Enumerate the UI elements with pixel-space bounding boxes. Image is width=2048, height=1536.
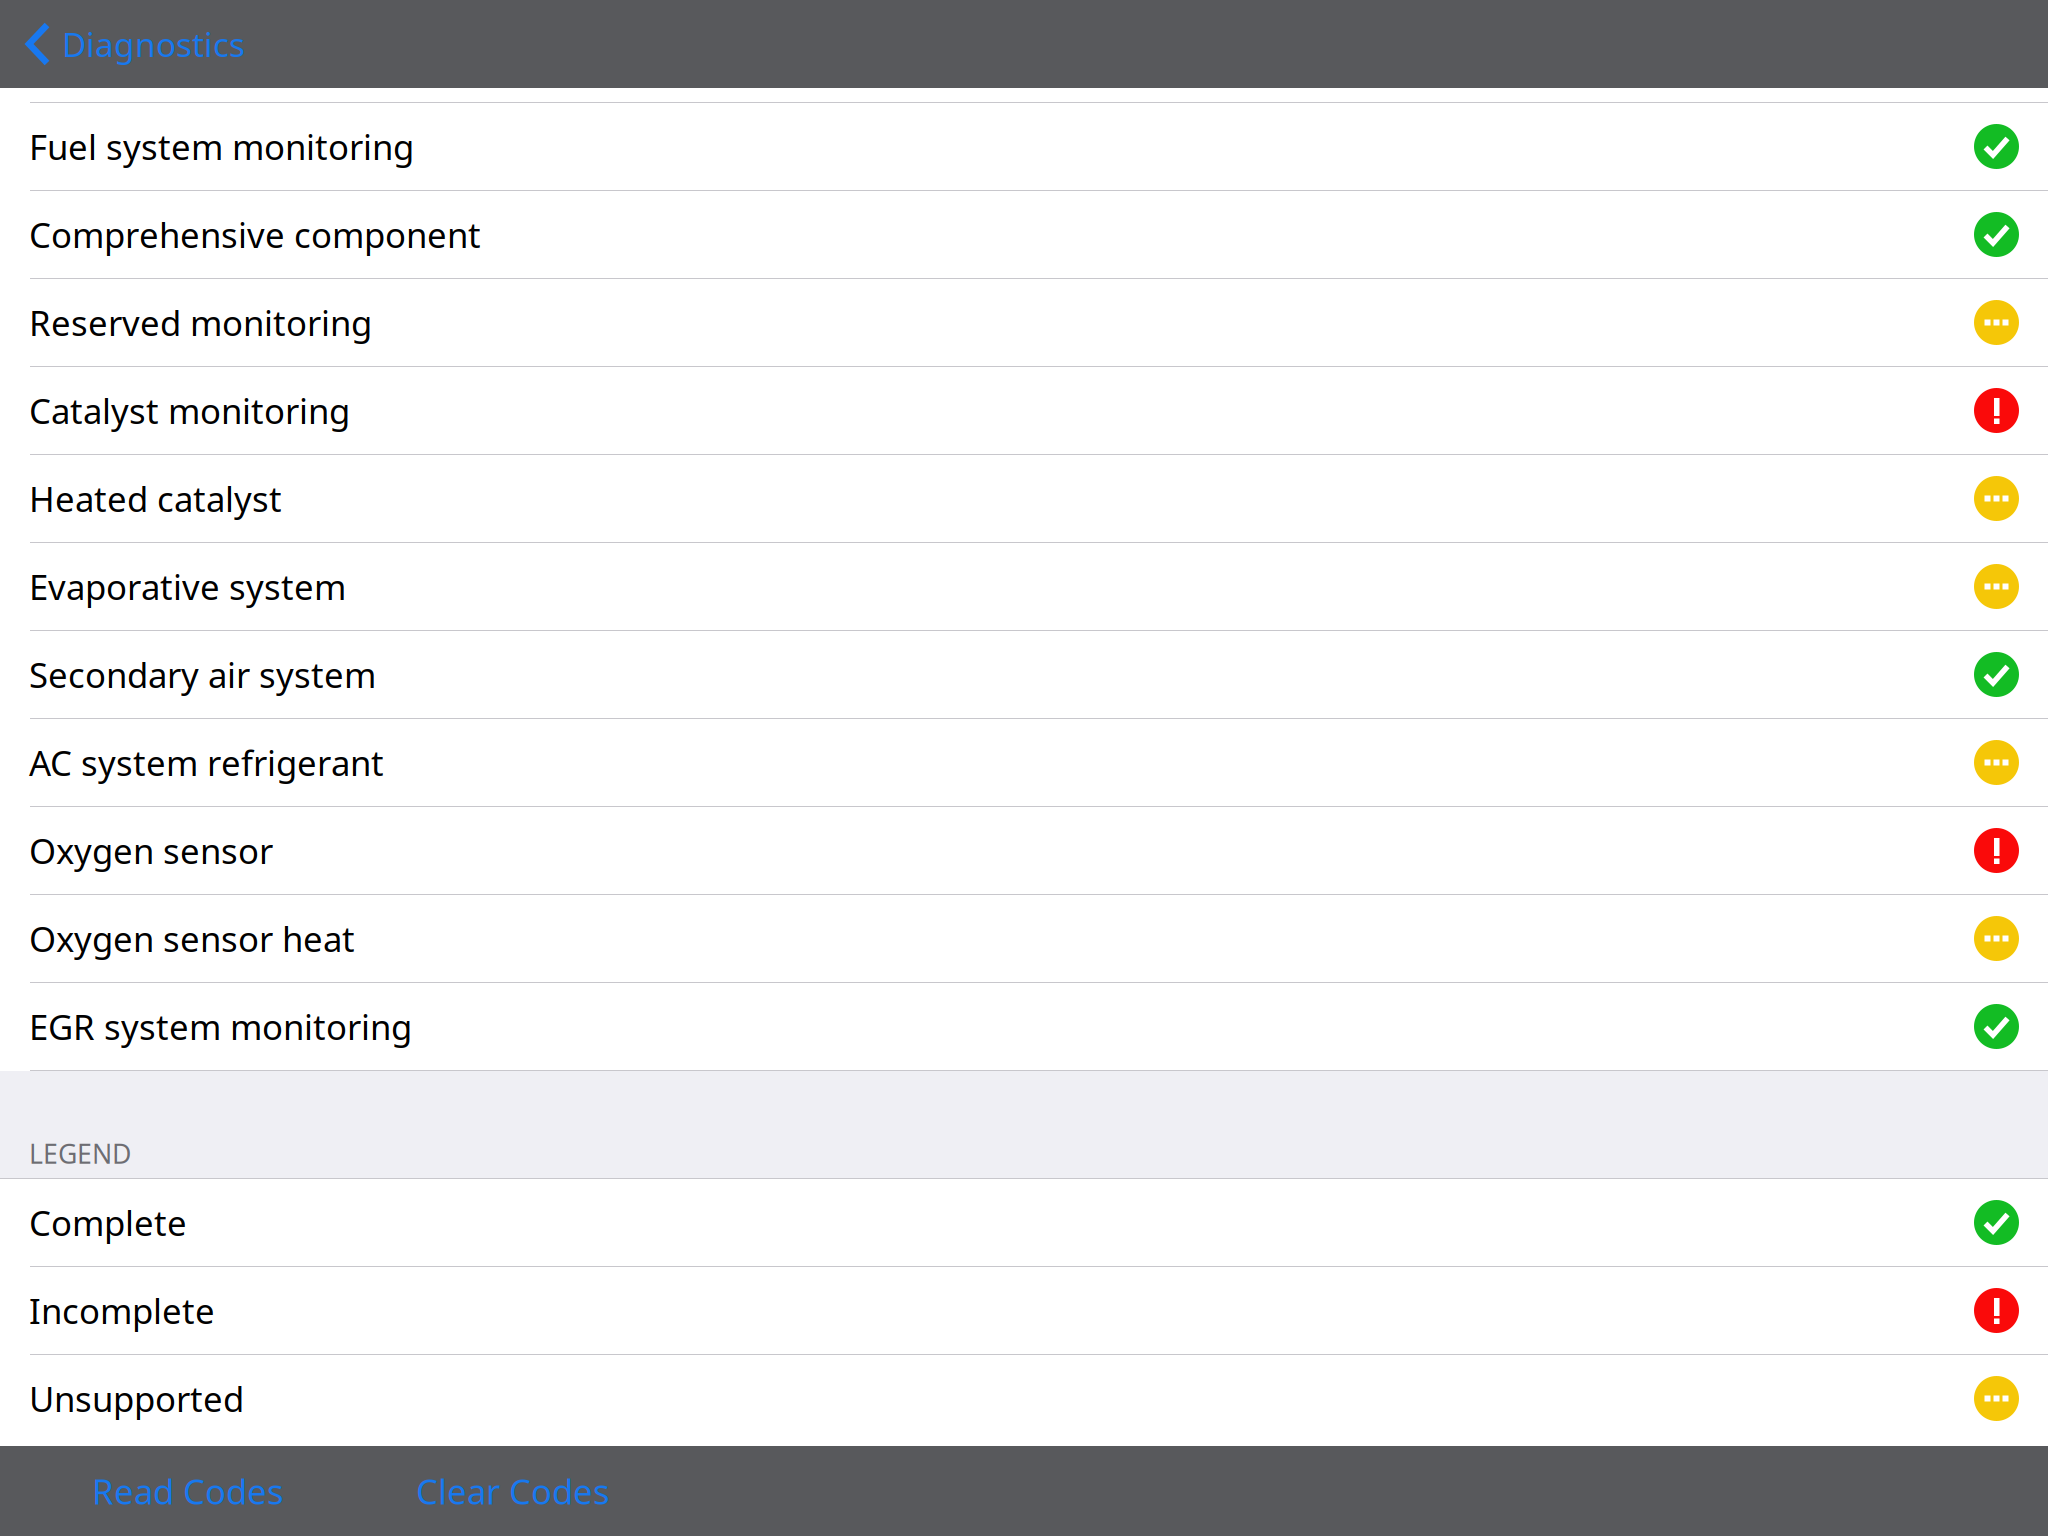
button[interactable]: AC system refrigerant <box>0 719 2048 807</box>
staticText: Diagnostics <box>62 22 245 66</box>
button[interactable]: Oxygen sensor <box>0 807 2048 895</box>
staticText: Heated catalyst <box>29 475 282 521</box>
button[interactable]: Complete <box>0 1179 2048 1267</box>
button[interactable]: Evaporative system <box>0 543 2048 631</box>
staticText: Unsupported <box>29 1375 244 1421</box>
button[interactable]: Oxygen sensor heat <box>0 895 2048 983</box>
staticText: Secondary air system <box>29 651 376 697</box>
button[interactable]: Back to Diagnostics <box>0 0 263 88</box>
staticText: Read Codes <box>92 1468 284 1514</box>
staticText: Fuel system monitoring <box>29 123 414 169</box>
button[interactable]: Clear Codes <box>327 1446 653 1536</box>
staticText: Oxygen sensor heat <box>29 915 355 961</box>
button[interactable]: Unsupported <box>0 1355 2048 1443</box>
button[interactable]: Secondary air system <box>0 631 2048 719</box>
button[interactable]: Incomplete <box>0 1267 2048 1355</box>
staticText: Catalyst monitoring <box>29 387 350 433</box>
staticText: EGR system monitoring <box>29 1003 412 1049</box>
staticText: LEGEND <box>29 1136 131 1171</box>
staticText: AC system refrigerant <box>29 739 384 785</box>
button[interactable]: Catalyst monitoring <box>0 367 2048 455</box>
button[interactable]: Heated catalyst <box>0 455 2048 543</box>
staticText: Complete <box>29 1199 187 1245</box>
staticText: Evaporative system <box>29 563 346 609</box>
button[interactable]: EGR system monitoring <box>0 983 2048 1071</box>
button[interactable]: Fuel system monitoring <box>0 103 2048 191</box>
staticText: Oxygen sensor <box>29 827 273 873</box>
button[interactable]: Reserved monitoring <box>0 279 2048 367</box>
staticText: Incomplete <box>29 1287 215 1333</box>
staticText: Clear Codes <box>416 1468 610 1514</box>
button[interactable]: Read Codes <box>0 1446 327 1536</box>
button[interactable]: Comprehensive component <box>0 191 2048 279</box>
staticText: Comprehensive component <box>29 211 481 257</box>
staticText: Reserved monitoring <box>29 299 372 345</box>
